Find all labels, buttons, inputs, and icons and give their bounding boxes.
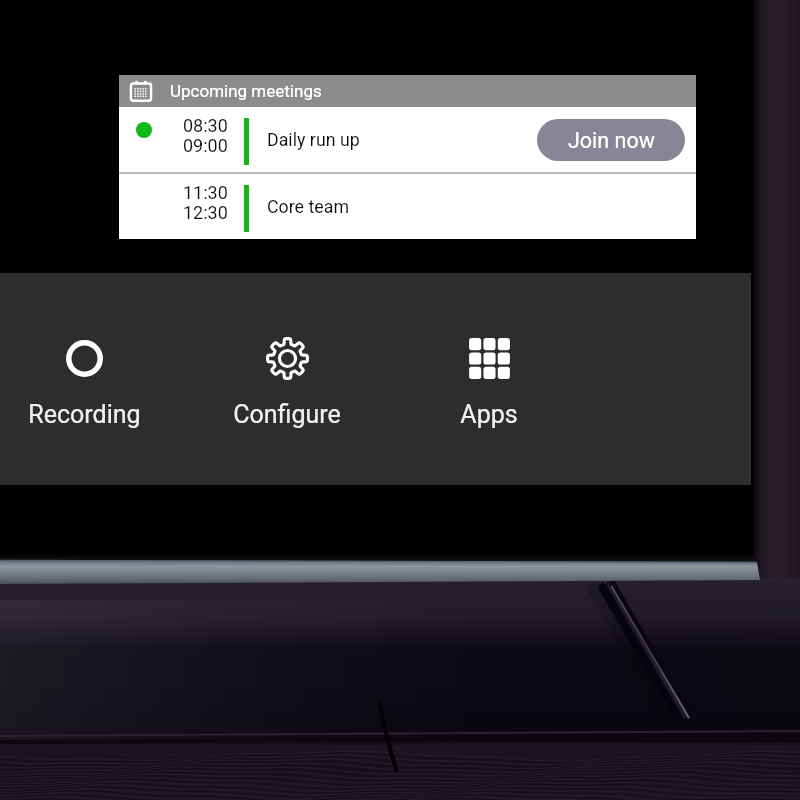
staticText: 09:00 — [183, 135, 228, 156]
button[interactable]: Apps — [417, 326, 561, 428]
button[interactable]: Upcoming meetings — [119, 75, 696, 107]
button[interactable]: 08:30 — [119, 107, 696, 172]
button[interactable]: 11:30 — [119, 174, 696, 239]
staticText: Join now — [568, 128, 655, 153]
button[interactable]: Join now — [537, 119, 685, 161]
staticText: Apps — [460, 400, 518, 429]
staticText: 12:30 — [183, 202, 228, 223]
staticText: Configure — [233, 400, 341, 429]
staticText: 11:30 — [183, 182, 228, 203]
other: Apps — [468, 337, 511, 380]
other: Recording — [66, 340, 103, 377]
button[interactable]: Configure — [215, 326, 359, 428]
other: Configure — [266, 337, 309, 380]
button[interactable]: Recording — [12, 326, 156, 428]
staticText: Daily run up — [267, 129, 360, 150]
staticText: Recording — [28, 400, 141, 429]
staticText: 08:30 — [183, 115, 228, 136]
staticText: Core team — [267, 196, 349, 217]
staticText: Upcoming meetings — [170, 81, 322, 101]
